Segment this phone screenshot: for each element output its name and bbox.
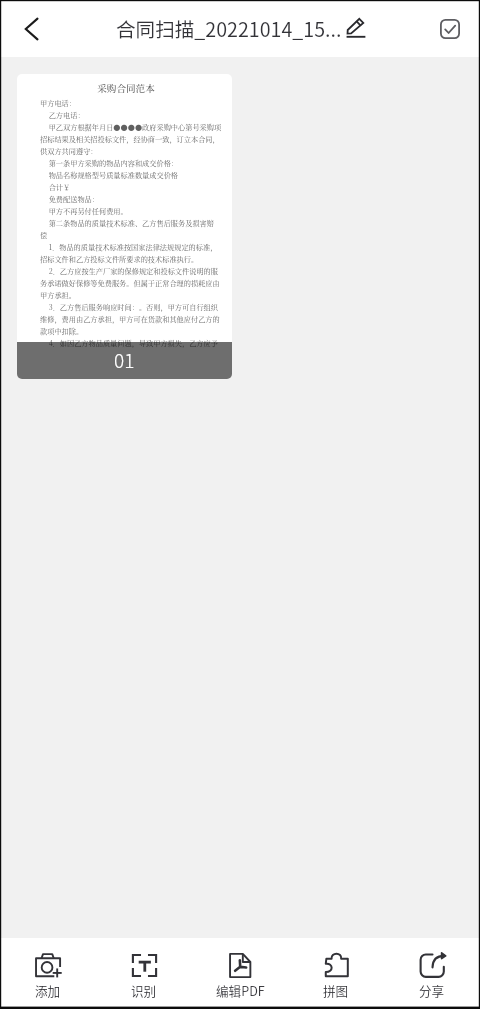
staticText: 偿 <box>40 230 48 240</box>
staticText: 合同扫描_20221014_15... <box>116 14 342 42</box>
staticText: 第二条物品的质量技术标准、乙方售后服务及损害赔 <box>40 218 214 228</box>
staticText: 招标文件和乙方投标文件所要求的技术标准执行。 <box>40 254 199 264</box>
button[interactable]: 添加 <box>0 938 96 999</box>
staticText: 合计￥ <box>40 182 71 192</box>
staticText: 编辑PDF <box>216 981 265 999</box>
button[interactable]: Rename <box>342 15 368 41</box>
staticText: 甲方不再另付任何费用。 <box>40 206 128 216</box>
staticText: 2．乙方应按生产厂家的保修规定和投标文件说明的服 <box>40 266 218 276</box>
button[interactable]: 分享 <box>384 938 480 999</box>
staticText: 供双方共同遵守： <box>40 146 98 156</box>
staticText: 识别 <box>131 981 157 999</box>
button[interactable]: 采购合同范本 <box>17 74 232 379</box>
staticText: 4．如因乙方物品质量问题，导致甲方损失，乙方应予 <box>40 338 218 348</box>
staticText: 乙方电话： <box>40 110 85 120</box>
staticText: 采购合同范本 <box>97 81 155 95</box>
button[interactable]: Back <box>9 7 53 51</box>
staticText: 分享 <box>419 981 445 999</box>
staticText: 维修，费用由乙方承担，甲方可在货款和其他应付乙方的 <box>40 314 220 324</box>
staticText: 01 <box>114 346 135 374</box>
staticText: 甲方承担。 <box>40 290 76 300</box>
button[interactable]: 编辑PDF <box>192 938 288 999</box>
staticText: 3．乙方售后服务响应时间：。否则，甲方可自行组织 <box>40 302 218 312</box>
staticText: 款项中扣除。 <box>40 326 84 336</box>
staticText: 甲乙双方根据年月日●●●●政府采购中心第号采购项目 <box>40 122 226 132</box>
staticText: 第一条甲方采购的物品内容和成交价格： <box>40 158 179 168</box>
button[interactable]: 识别 <box>96 938 192 999</box>
staticText: 招标结果及相关招投标文件，经协商一致，订立本合同， <box>40 134 220 144</box>
button[interactable]: 拼图 <box>288 938 384 999</box>
staticText: 1．物品的质量技术标准按国家法律法规规定的标准， <box>40 242 218 252</box>
staticText: 拼图 <box>323 981 349 999</box>
staticText: 甲方电话： <box>40 98 76 108</box>
staticText: 免费配送物品： <box>40 194 99 204</box>
staticText: 添加 <box>35 981 61 999</box>
staticText: 物品名称规格型号质量标准数量成交价格 <box>40 170 179 180</box>
staticText: 务承诺做好保修等免费服务。但属于正常合理的损耗应由 <box>40 278 220 288</box>
button[interactable]: Select all <box>429 8 471 50</box>
